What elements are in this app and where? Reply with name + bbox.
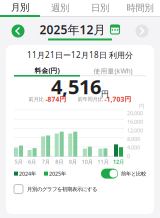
staticText: 円: [139, 103, 144, 109]
staticText: 時間別: [126, 2, 153, 14]
staticText: 月別のグラフを初期表示にする: [27, 186, 97, 192]
button[interactable]: 2025年12月: [39, 21, 120, 40]
staticText: 12月: [113, 158, 124, 165]
staticText: 0: [127, 152, 130, 160]
button[interactable]: 使用量(kWh): [80, 66, 146, 76]
staticText: 日別: [91, 2, 109, 14]
button[interactable]: 月別のグラフを初期表示にする: [6, 184, 154, 195]
staticText: 6月: [28, 158, 36, 165]
staticText: 4,516: [51, 73, 101, 100]
staticText: 12,000: [127, 127, 143, 134]
staticText: 2024年: [18, 170, 36, 177]
staticText: 20,000: [127, 110, 143, 117]
staticText: 8,000: [127, 135, 140, 142]
staticText: 16,000: [127, 118, 143, 125]
staticText: 9月: [69, 158, 77, 165]
staticText: 料金(円): [34, 66, 59, 75]
button[interactable]: 次の月: [130, 19, 154, 43]
button[interactable]: 料金(円): [14, 66, 80, 77]
staticText: 前年同月比: [77, 96, 104, 102]
staticText: 11月: [97, 158, 108, 165]
staticText: 4,000: [127, 144, 140, 151]
button[interactable]: 前の月: [6, 19, 30, 43]
staticText: -874円: [45, 95, 66, 104]
button[interactable]: 前年と比較: [101, 169, 146, 179]
staticText: 月別: [11, 2, 29, 13]
button[interactable]: 時間別: [120, 0, 160, 17]
staticText: -1,703円: [104, 95, 131, 104]
staticText: 週別: [51, 2, 69, 14]
button[interactable]: 週別: [40, 0, 80, 17]
staticText: 8月: [55, 158, 63, 165]
staticText: 円: [101, 89, 109, 99]
staticText: 2025年: [48, 170, 66, 177]
staticText: 5月: [14, 158, 22, 165]
button[interactable]: 月別: [0, 0, 40, 17]
staticText: 7月: [42, 158, 50, 165]
staticText: 前月比: [28, 96, 45, 102]
staticText: 前年と比較: [121, 170, 146, 177]
staticText: 使用量(kWh): [93, 66, 132, 75]
button[interactable]: 日別: [80, 0, 120, 17]
staticText: 10月: [82, 158, 93, 165]
staticText: 11月21日ー12月18日 利用分: [27, 50, 133, 60]
staticText: 2025年12月: [39, 21, 105, 37]
